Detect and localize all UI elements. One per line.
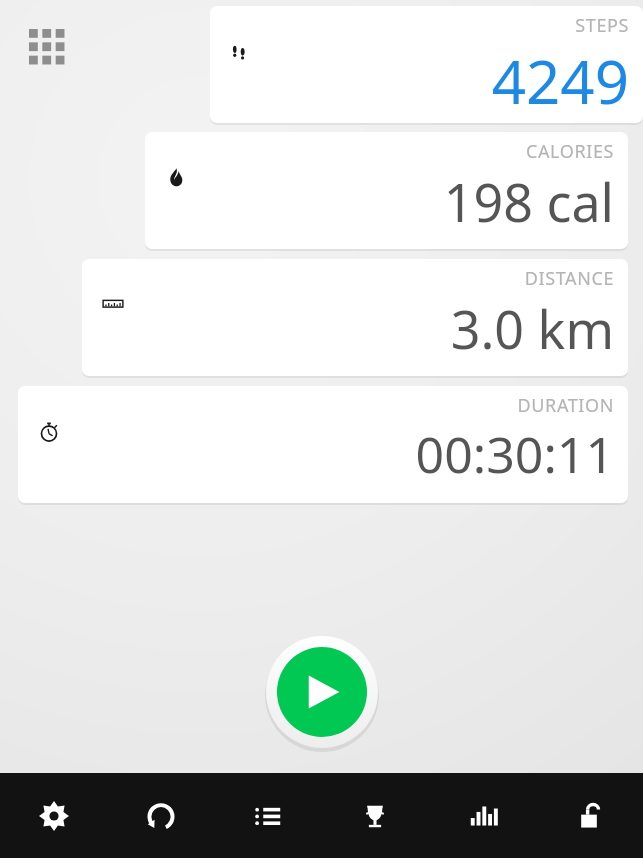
button[interactable]: DURATION (18, 386, 628, 503)
staticText: 3.0 km (450, 293, 614, 364)
button[interactable]: STEPS (210, 6, 643, 123)
button[interactable]: Statistics (428, 773, 535, 858)
staticText: 198 cal (443, 166, 614, 237)
button[interactable]: History (107, 773, 214, 858)
button[interactable]: Settings (0, 773, 107, 858)
staticText: STEPS (575, 13, 629, 38)
button[interactable]: CALORIES (145, 132, 628, 249)
button[interactable]: Lock (535, 773, 642, 858)
staticText: CALORIES (526, 139, 614, 164)
button[interactable]: List (214, 773, 321, 858)
button[interactable]: Apps (26, 26, 72, 72)
staticText: DISTANCE (524, 266, 614, 291)
staticText: 00:30:11 (415, 420, 614, 488)
staticText: DURATION (517, 393, 614, 418)
button[interactable]: DISTANCE (82, 259, 628, 376)
staticText: 4249 (491, 40, 629, 122)
button[interactable]: Achievements (321, 773, 428, 858)
button[interactable]: Start workout (265, 635, 379, 749)
